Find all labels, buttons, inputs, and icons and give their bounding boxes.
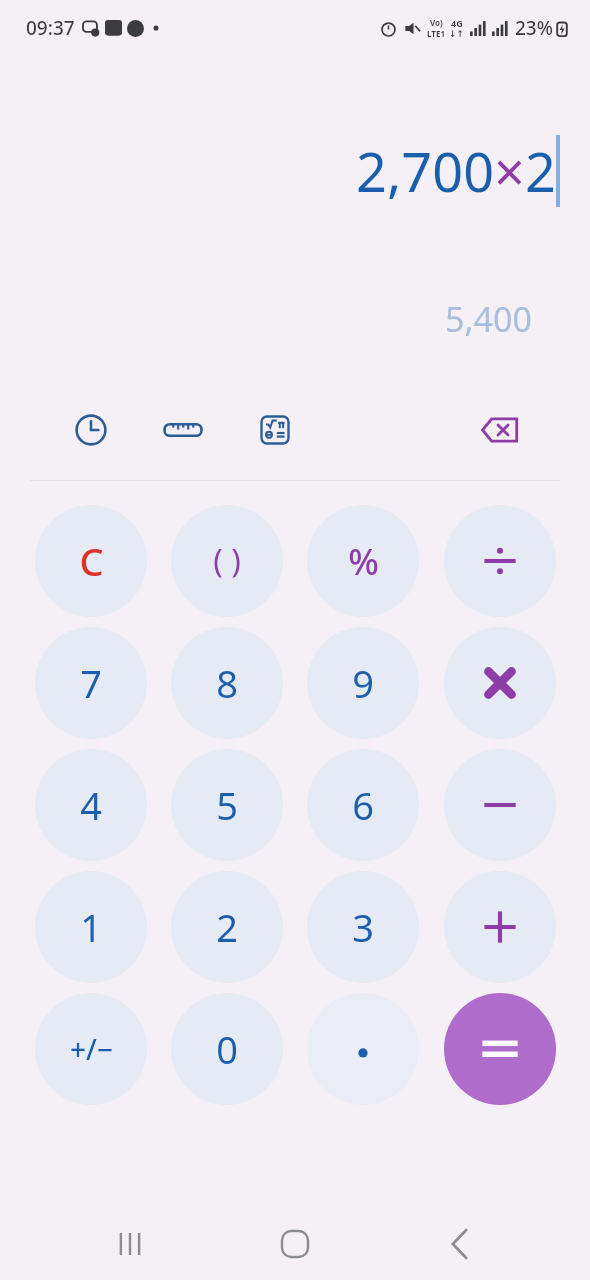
button[interactable]: 6: [307, 749, 419, 861]
button[interactable]: 9: [307, 627, 419, 739]
staticText: LTE1: [427, 28, 445, 39]
staticText: 2: [216, 901, 238, 953]
staticText: 9: [352, 657, 374, 709]
staticText: 23%: [515, 15, 553, 41]
staticText: 4G: [451, 17, 463, 29]
staticText: 7: [80, 657, 102, 709]
staticText: 3: [352, 901, 374, 953]
staticText: 1: [80, 901, 102, 953]
staticText: C: [79, 535, 104, 587]
button[interactable]: [444, 505, 556, 617]
staticText: 0: [216, 1023, 238, 1075]
staticText: %: [348, 537, 379, 586]
button[interactable]: 8: [171, 627, 283, 739]
button[interactable]: 3: [307, 871, 419, 983]
button[interactable]: 2: [171, 871, 283, 983]
button[interactable]: C: [35, 505, 147, 617]
staticText: 6: [352, 779, 374, 831]
button[interactable]: 0: [171, 993, 283, 1105]
button[interactable]: Scientific calculator: [245, 404, 305, 456]
button[interactable]: Back: [425, 1209, 495, 1279]
button[interactable]: 5: [171, 749, 283, 861]
button[interactable]: History: [61, 404, 121, 456]
staticText: 5,400: [445, 296, 532, 342]
staticText: 8: [216, 657, 238, 709]
button[interactable]: %: [307, 505, 419, 617]
staticText: 4: [80, 779, 102, 831]
staticText: 5: [216, 779, 238, 831]
staticText: +/−: [70, 1030, 113, 1068]
button[interactable]: [444, 749, 556, 861]
button[interactable]: Home: [260, 1209, 330, 1279]
button[interactable]: Equals: [444, 993, 556, 1105]
staticText: 09:37: [26, 15, 75, 41]
button[interactable]: 1: [35, 871, 147, 983]
button[interactable]: ( ): [171, 505, 283, 617]
staticText: ↓↑: [449, 29, 465, 39]
button[interactable]: [444, 871, 556, 983]
button[interactable]: Unit converter: [153, 404, 213, 456]
staticText: ( ): [213, 539, 241, 583]
button[interactable]: 7: [35, 627, 147, 739]
button[interactable]: +/−: [35, 993, 147, 1105]
staticText: 2,700×2: [356, 134, 556, 208]
button[interactable]: 4: [35, 749, 147, 861]
button[interactable]: [307, 993, 419, 1105]
button[interactable]: [444, 627, 556, 739]
button[interactable]: Recent apps: [95, 1209, 165, 1279]
staticText: Vo): [430, 17, 443, 28]
button[interactable]: Backspace: [470, 404, 530, 456]
